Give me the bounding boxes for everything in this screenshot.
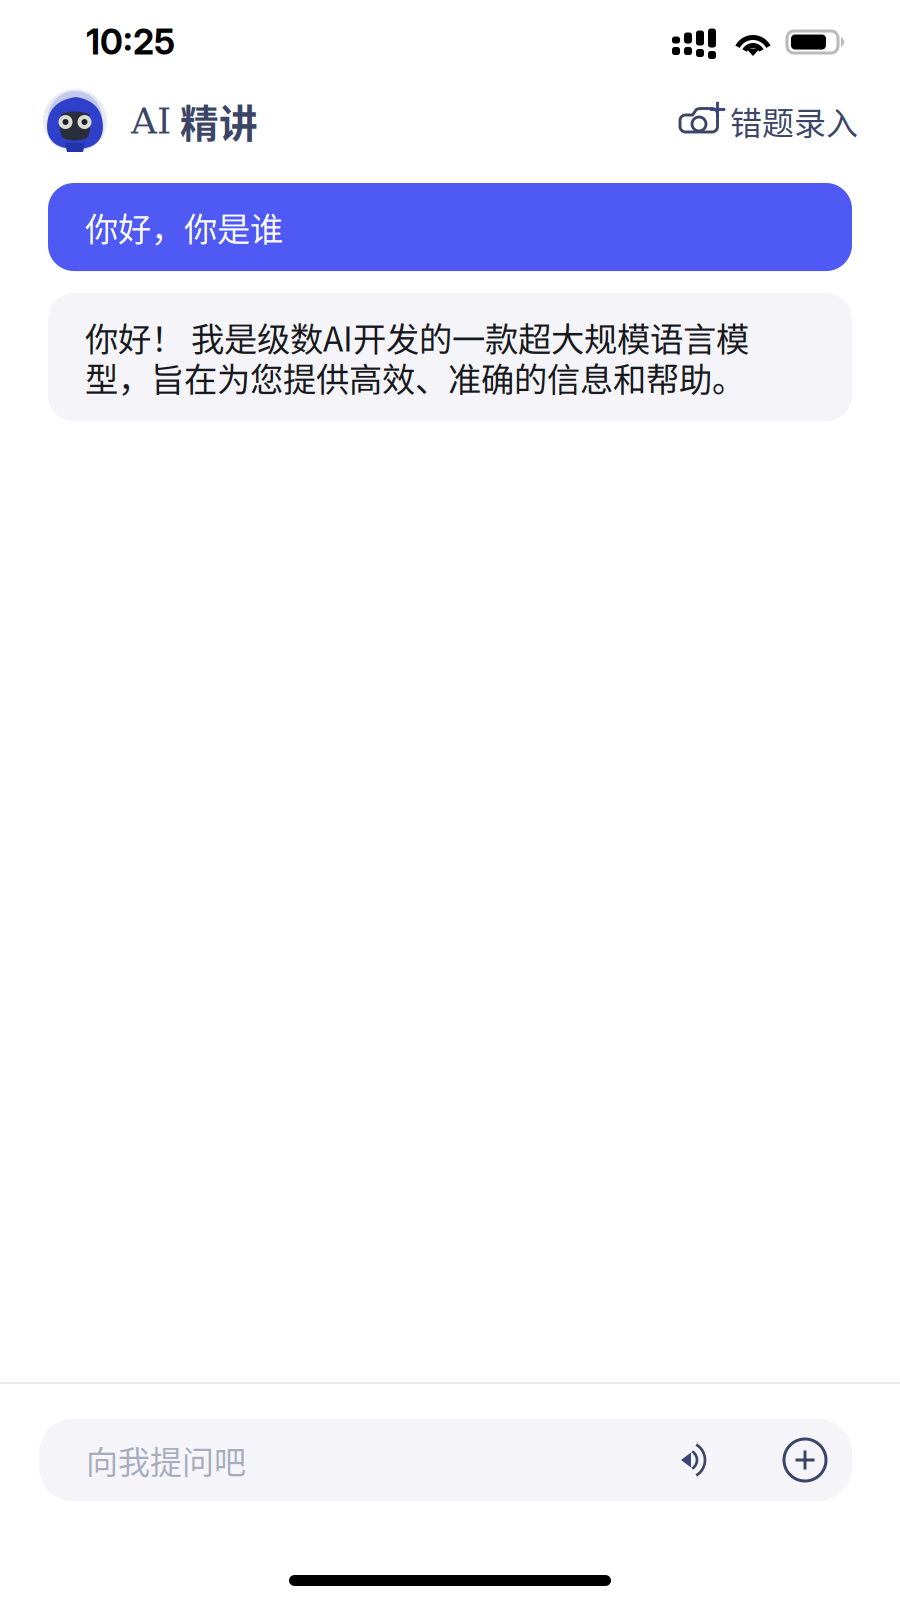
button[interactable]: Add attachment — [784, 1439, 826, 1481]
staticText: 10:25 — [86, 21, 175, 63]
button[interactable]: AI — [43, 83, 258, 159]
staticText: AI — [131, 100, 171, 142]
staticText: 错题录入 — [730, 102, 858, 140]
button[interactable]: 错题录入 — [675, 96, 858, 146]
staticText: 向我提问吧 — [86, 1441, 246, 1479]
staticText: 你好，你是谁 — [85, 207, 283, 247]
button[interactable]: Voice input — [680, 1443, 709, 1477]
staticText: 你好！ 我是级数AI开发的一款超大规模语言模型，旨在为您提供高效、准确的信息和帮… — [85, 317, 749, 397]
staticText: 精讲 — [180, 98, 258, 144]
